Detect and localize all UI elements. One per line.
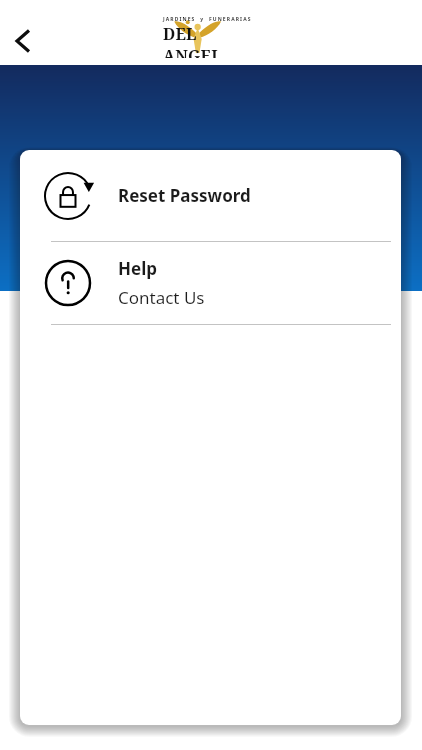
- staticText: Help: [118, 257, 157, 280]
- staticText: Contact Us: [118, 286, 205, 309]
- button[interactable]: Help: [20, 242, 401, 324]
- staticText: JARDINES y FUNERARIAS: [163, 16, 252, 23]
- button[interactable]: Reset Password: [20, 150, 401, 241]
- staticText: Reset Password: [118, 184, 251, 207]
- staticText: DEL ANGEL: [163, 23, 253, 58]
- button[interactable]: Back: [2, 20, 44, 62]
